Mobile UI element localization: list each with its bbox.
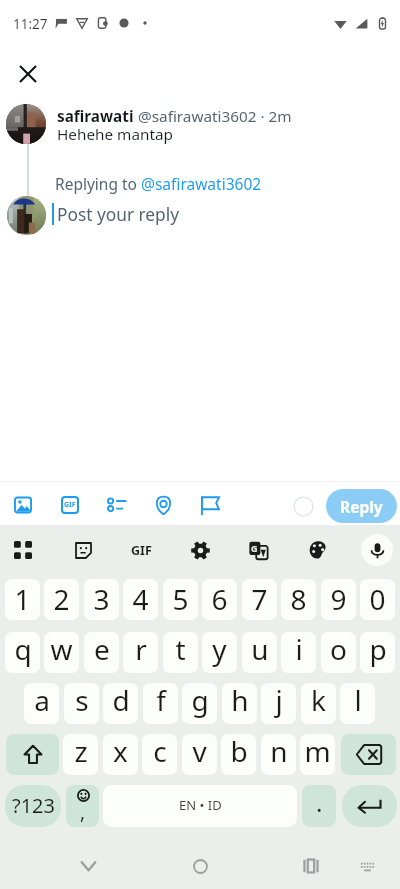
button[interactable]: n	[261, 734, 296, 775]
staticText: e	[94, 632, 110, 668]
button[interactable]: o	[321, 632, 356, 673]
button[interactable]: EN • ID	[103, 785, 297, 827]
button[interactable]: Tag topic	[196, 491, 224, 519]
staticText: t	[175, 632, 186, 668]
button[interactable]: h	[222, 683, 257, 724]
button[interactable]: m	[300, 734, 335, 775]
button[interactable]: 7	[242, 579, 277, 620]
button[interactable]: k	[301, 683, 336, 724]
staticText: ,	[80, 799, 86, 825]
staticText: i	[295, 632, 303, 668]
staticText: y	[212, 632, 227, 668]
staticText: 11:27	[13, 15, 48, 33]
staticText: safirawati	[57, 106, 134, 127]
staticText: v	[192, 734, 207, 770]
staticText: z	[74, 734, 88, 770]
button[interactable]: 4	[123, 579, 158, 620]
button[interactable]: Settings	[186, 536, 214, 564]
button[interactable]: 3	[84, 579, 119, 620]
button[interactable]: u	[242, 632, 277, 673]
button[interactable]: 9	[321, 579, 356, 620]
button[interactable]: Voice input	[361, 534, 393, 566]
button[interactable]: Add photo	[9, 491, 37, 519]
button[interactable]: Close	[9, 55, 47, 93]
button[interactable]: Switch keyboard	[349, 848, 385, 884]
staticText: f	[156, 683, 166, 719]
button[interactable]: r	[123, 632, 158, 673]
staticText: q	[14, 632, 32, 668]
button[interactable]: p	[360, 632, 395, 673]
button[interactable]: Shift	[6, 734, 59, 775]
staticText: c	[153, 734, 167, 770]
button[interactable]: Add location	[149, 491, 177, 519]
button[interactable]: Theme	[304, 536, 332, 564]
button[interactable]: Symbols	[5, 785, 61, 827]
button[interactable]: d	[103, 683, 138, 724]
button[interactable]: Back	[70, 848, 106, 884]
button[interactable]: c	[142, 734, 177, 775]
staticText: h	[231, 683, 249, 719]
button[interactable]: 2	[44, 579, 79, 620]
button[interactable]: x	[103, 734, 138, 775]
staticText: 3	[93, 580, 110, 618]
staticText: b	[230, 734, 248, 770]
button[interactable]: e	[84, 632, 119, 673]
button[interactable]: b	[221, 734, 256, 775]
button[interactable]: j	[261, 683, 296, 724]
staticText: Hehehe mantap	[57, 124, 173, 145]
button[interactable]: Emoji	[66, 785, 99, 827]
button[interactable]: t	[163, 632, 198, 673]
button[interactable]: w	[44, 632, 79, 673]
staticText: GIF	[131, 542, 152, 559]
staticText: EN • ID	[179, 796, 222, 814]
button[interactable]: 1	[5, 579, 40, 620]
staticText: r	[135, 632, 147, 668]
staticText: m	[304, 734, 331, 770]
staticText: @safirawati3602	[141, 173, 262, 194]
button[interactable]: Reply	[326, 489, 397, 523]
button[interactable]: l	[340, 683, 375, 724]
staticText: 4	[132, 580, 149, 618]
button[interactable]: z	[63, 734, 98, 775]
button[interactable]: s	[64, 683, 99, 724]
button[interactable]: y	[202, 632, 237, 673]
button[interactable]: Recent apps	[293, 848, 329, 884]
button[interactable]: Add GIF	[56, 491, 84, 519]
staticText: 8	[290, 580, 307, 618]
staticText: GIF	[64, 500, 76, 510]
staticText: Reply	[340, 496, 383, 517]
staticText: G	[251, 542, 258, 554]
staticText: u	[251, 632, 269, 668]
button[interactable]: Home	[182, 848, 218, 884]
button[interactable]: f	[143, 683, 178, 724]
staticText: k	[311, 683, 326, 719]
staticText: n	[270, 734, 288, 770]
button[interactable]: a	[24, 683, 59, 724]
button[interactable]: Apps	[9, 536, 37, 564]
button[interactable]: g	[182, 683, 217, 724]
staticText: 7	[251, 580, 268, 618]
button[interactable]: Add poll	[103, 491, 131, 519]
button[interactable]: Period	[302, 785, 336, 827]
button[interactable]: v	[182, 734, 217, 775]
staticText: ?123	[12, 792, 55, 819]
button[interactable]: q	[5, 632, 40, 673]
staticText: x	[113, 734, 128, 770]
staticText: p	[369, 632, 387, 668]
button[interactable]: 8	[281, 579, 316, 620]
staticText: 1	[14, 580, 31, 618]
button[interactable]: Translate	[244, 536, 272, 564]
button[interactable]: 6	[202, 579, 237, 620]
button[interactable]: Backspace	[341, 734, 396, 775]
button[interactable]: 0	[360, 579, 395, 620]
staticText: Post your reply	[57, 203, 180, 227]
staticText: .	[316, 786, 323, 819]
button[interactable]: Enter	[342, 785, 397, 827]
button[interactable]: i	[281, 632, 316, 673]
button[interactable]: Character count	[293, 496, 314, 517]
button[interactable]: Stickers	[69, 536, 97, 564]
staticText: @safirawati3602 · 2m	[134, 106, 292, 127]
button[interactable]: GIF	[127, 536, 155, 564]
staticText: w	[50, 632, 73, 668]
button[interactable]: 5	[163, 579, 198, 620]
